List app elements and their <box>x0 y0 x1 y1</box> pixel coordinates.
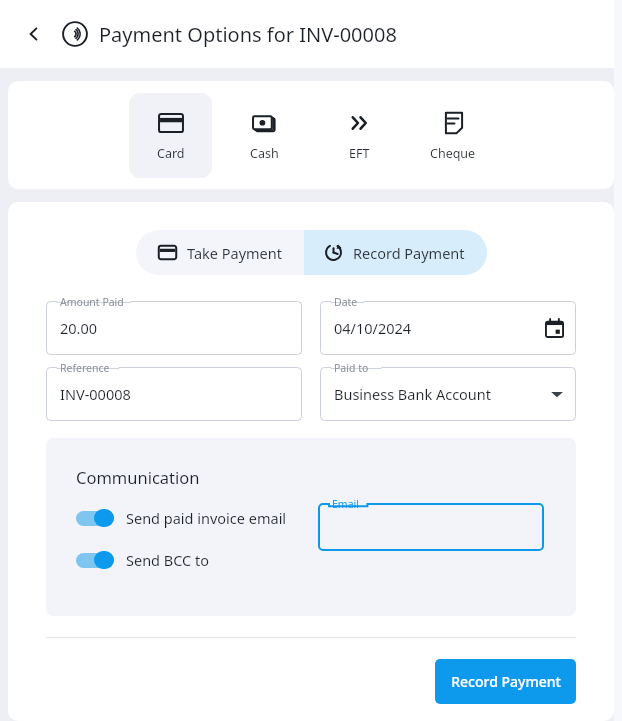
staticText: INV-00008 <box>60 384 290 404</box>
button[interactable]: Amount Paid <box>46 301 302 355</box>
staticText: 20.00 <box>60 318 290 338</box>
staticText: 04/10/2024 <box>334 318 545 338</box>
button[interactable]: Back <box>14 14 54 54</box>
button[interactable]: Send paid invoice email <box>76 508 287 528</box>
button[interactable]: EFT <box>317 93 400 178</box>
button[interactable]: Take Payment <box>158 230 282 275</box>
staticText: Email <box>332 497 359 511</box>
button[interactable]: Record Payment <box>435 659 576 704</box>
staticText: Cheque <box>430 145 476 162</box>
staticText: Business Bank Account <box>334 384 550 404</box>
button[interactable]: Email <box>318 503 544 551</box>
button[interactable]: Cheque <box>411 93 494 178</box>
button[interactable]: Cash <box>223 93 306 178</box>
button[interactable]: Date <box>320 301 576 355</box>
button[interactable]: Card <box>129 93 212 178</box>
staticText: Cash <box>250 145 279 162</box>
staticText: Communication <box>76 466 200 488</box>
staticText: Amount Paid <box>60 295 124 309</box>
staticText: Paid to <box>334 361 369 375</box>
button[interactable]: Record Payment <box>324 230 465 275</box>
staticText: Record Payment <box>451 672 561 691</box>
staticText: EFT <box>349 145 370 162</box>
staticText: Send BCC to <box>126 550 210 570</box>
staticText: Date <box>334 295 358 309</box>
button[interactable]: Send BCC to <box>76 550 210 570</box>
button[interactable]: Reference <box>46 367 302 421</box>
staticText: Reference <box>60 361 110 375</box>
staticText: Send paid invoice email <box>126 508 287 528</box>
staticText: Record Payment <box>353 243 465 263</box>
staticText: Take Payment <box>187 243 282 263</box>
staticText: Card <box>157 145 185 162</box>
staticText: Payment Options for INV-00008 <box>99 21 397 48</box>
button[interactable]: Paid to <box>320 367 576 421</box>
